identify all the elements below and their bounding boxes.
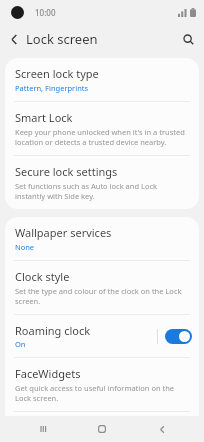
staticText: Get quick access to useful information o… [15,383,189,403]
button[interactable]: Back [145,416,179,442]
staticText: Roaming clock [15,323,91,338]
staticText: Wallpaper services [15,225,112,240]
staticText: Screen lock type [15,66,99,81]
staticText: None [15,242,35,252]
button[interactable]: Roaming clock [5,315,199,357]
staticText: FaceWidgets [15,366,81,381]
button[interactable]: Home [85,416,119,442]
button[interactable]: Secure lock settings [5,156,199,209]
button[interactable]: Smart Lock [5,102,199,155]
staticText: Pattern, Fingerprints [15,83,89,93]
button[interactable]: Search [177,28,199,50]
staticText: 10:00 [35,7,56,18]
staticText: Lock screen [26,30,98,48]
button[interactable]: Wallpaper services [5,217,199,260]
staticText: On [15,339,26,349]
button[interactable]: Clock style [5,261,199,314]
button[interactable]: FaceWidgets [5,358,199,411]
button[interactable]: Screen lock type [5,58,199,101]
button[interactable]: Recent apps [26,416,60,442]
staticText: Keep your phone unlocked when it's in a … [15,127,189,147]
staticText: Smart Lock [15,110,73,125]
button[interactable]: Roaming clock switch, on [165,329,192,344]
staticText: Secure lock settings [15,164,118,179]
button[interactable]: Navigate up [3,28,25,50]
staticText: Clock style [15,269,70,284]
staticText: Set the type and colour of the clock on … [15,286,189,306]
staticText: Set functions such as Auto lock and Lock… [15,181,189,201]
